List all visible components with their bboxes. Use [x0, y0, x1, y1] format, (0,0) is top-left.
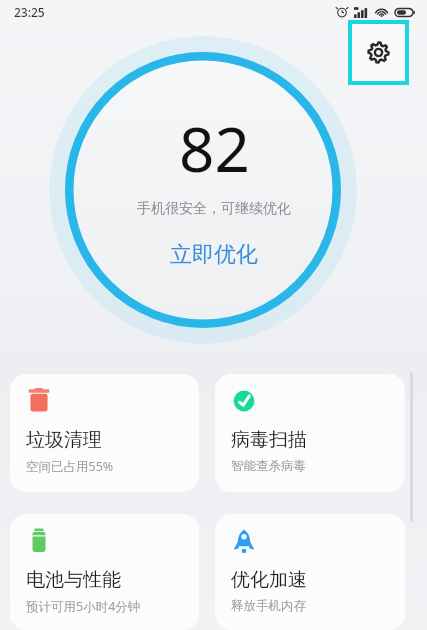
staticText: 23:25	[14, 4, 45, 20]
staticText: 电池与性能	[26, 568, 121, 592]
button[interactable]: 病毒扫描	[215, 374, 405, 492]
staticText: 病毒扫描	[231, 428, 307, 452]
button[interactable]: 立即优化	[160, 238, 268, 272]
staticText: 82	[179, 106, 250, 190]
staticText: 手机很安全，可继续优化	[137, 200, 291, 218]
staticText: 优化加速	[231, 568, 307, 592]
button[interactable]: Settings	[352, 24, 405, 81]
button[interactable]: 电池与性能	[10, 514, 199, 630]
staticText: 释放手机内存	[231, 598, 306, 614]
button[interactable]: 优化加速	[215, 514, 405, 630]
staticText: 智能查杀病毒	[231, 458, 306, 474]
staticText: 预计可用5小时4分钟	[26, 598, 141, 615]
staticText: 空间已占用55%	[26, 458, 114, 475]
staticText: 立即优化	[170, 241, 258, 269]
staticText: 垃圾清理	[26, 428, 102, 452]
button[interactable]: 垃圾清理	[10, 374, 199, 492]
